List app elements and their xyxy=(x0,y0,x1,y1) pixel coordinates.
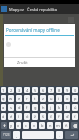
staticText: , xyxy=(16,133,18,138)
button[interactable]: 0 xyxy=(72,87,78,93)
button[interactable]: m xyxy=(55,122,61,129)
button[interactable]: , xyxy=(13,131,20,139)
button[interactable]: r xyxy=(24,95,30,102)
button[interactable]: Space xyxy=(22,131,54,139)
button[interactable]: u xyxy=(48,95,54,102)
button[interactable]: í xyxy=(16,113,22,120)
button[interactable]: ó xyxy=(24,113,30,120)
button[interactable]: w xyxy=(8,95,14,102)
staticText: ř xyxy=(58,114,60,119)
staticText: í xyxy=(18,114,20,119)
staticText: 1 xyxy=(2,88,5,93)
staticText: r xyxy=(26,96,28,101)
staticText: Porovnávání mapy offline xyxy=(6,27,60,33)
staticText: ó xyxy=(26,114,29,119)
button[interactable]: ř xyxy=(56,113,62,120)
button[interactable]: v xyxy=(31,122,37,129)
staticText: 8 xyxy=(58,88,61,93)
button[interactable]: j xyxy=(48,104,54,111)
button[interactable]: 1 xyxy=(1,87,6,93)
staticText: w xyxy=(9,96,13,101)
staticText: a xyxy=(2,105,5,110)
button[interactable]: b xyxy=(39,122,45,129)
button[interactable]: x xyxy=(16,122,21,129)
staticText: g xyxy=(34,105,37,110)
button[interactable]: h xyxy=(40,104,46,111)
staticText: b xyxy=(41,123,44,128)
staticText: 5 xyxy=(34,88,37,93)
staticText: x xyxy=(17,123,20,128)
button[interactable]: p xyxy=(72,95,78,102)
button[interactable]: a xyxy=(1,104,6,111)
button[interactable]: Mapy.cz Česká republika xyxy=(0,4,79,14)
staticText: z xyxy=(42,96,44,101)
button[interactable]: o xyxy=(64,95,70,102)
staticText: o xyxy=(66,96,69,101)
staticText: Mapy.cz Česká republika xyxy=(9,7,57,12)
button[interactable]: c xyxy=(23,122,29,129)
staticText: 0 xyxy=(74,88,77,93)
button[interactable]: d xyxy=(16,104,22,111)
button[interactable]: ú xyxy=(72,104,78,111)
button[interactable]: i xyxy=(56,95,62,102)
staticText: š xyxy=(42,114,44,119)
button[interactable]: q xyxy=(1,95,6,102)
button[interactable]: Symbols xyxy=(1,131,11,139)
button[interactable]: l xyxy=(64,104,70,111)
button[interactable]: Backspace xyxy=(71,122,78,129)
staticText: j xyxy=(50,105,52,110)
button[interactable]: 5 xyxy=(32,87,38,93)
staticText: l xyxy=(66,105,68,110)
button[interactable]: č xyxy=(48,113,54,120)
button[interactable]: á xyxy=(1,113,6,120)
button[interactable]: 6 xyxy=(40,87,46,93)
button[interactable]: 7 xyxy=(48,87,54,93)
staticText: p xyxy=(74,96,77,101)
staticText: ď xyxy=(66,114,69,119)
staticText: i xyxy=(58,96,60,101)
button[interactable]: e xyxy=(16,95,22,102)
staticText: n xyxy=(49,123,52,128)
button[interactable]: 9 xyxy=(64,87,70,93)
staticText: é xyxy=(10,114,13,119)
button[interactable]: Shift xyxy=(1,122,7,129)
staticText: t xyxy=(34,96,36,101)
button[interactable]: n xyxy=(47,122,53,129)
staticText: u xyxy=(50,96,53,101)
staticText: 6 xyxy=(42,88,45,93)
button[interactable]: Enter xyxy=(65,131,78,139)
button[interactable]: s xyxy=(8,104,14,111)
button[interactable]: ň xyxy=(63,122,69,129)
button[interactable]: 2 xyxy=(8,87,14,93)
staticText: m xyxy=(56,123,60,128)
button[interactable]: 3 xyxy=(16,87,22,93)
staticText: ť xyxy=(74,114,76,119)
staticText: ň xyxy=(65,123,68,128)
button[interactable]: ď xyxy=(64,113,70,120)
button[interactable]: k xyxy=(56,104,62,111)
button[interactable]: t xyxy=(32,95,38,102)
staticText: 3 xyxy=(18,88,21,93)
button[interactable]: 4 xyxy=(24,87,30,93)
staticText: c xyxy=(25,123,27,128)
button[interactable]: . xyxy=(56,131,63,139)
staticText: e xyxy=(18,96,21,101)
button[interactable]: ť xyxy=(72,113,78,120)
button[interactable]: y xyxy=(9,122,14,129)
staticText: ?123 xyxy=(3,133,10,137)
button[interactable]: ž xyxy=(32,113,38,120)
staticText: k xyxy=(58,105,61,110)
button[interactable]: Zrušit xyxy=(14,58,30,67)
button[interactable]: š xyxy=(40,113,46,120)
staticText: d xyxy=(18,105,21,110)
button[interactable]: g xyxy=(32,104,38,111)
button[interactable]: 8 xyxy=(56,87,62,93)
staticText: 2 xyxy=(10,88,13,93)
staticText: Zrušit xyxy=(17,60,28,65)
staticText: 9 xyxy=(66,88,69,93)
button[interactable]: z xyxy=(40,95,46,102)
button[interactable]: f xyxy=(24,104,30,111)
staticText: s xyxy=(10,105,12,110)
button[interactable]: é xyxy=(8,113,14,120)
